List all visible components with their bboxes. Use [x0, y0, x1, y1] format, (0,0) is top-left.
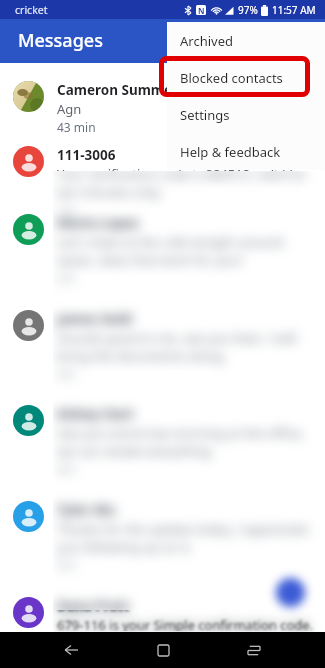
staticText: cricket: [15, 3, 48, 17]
staticText: Thanks for the update today, I appreciat…: [57, 520, 315, 556]
button[interactable]: Kelsey Hart: [0, 387, 325, 483]
staticText: Agn: [57, 100, 82, 118]
button[interactable]: Archived: [167, 22, 325, 59]
staticText: 97%: [238, 3, 258, 17]
staticText: Sounds good to me, see you then. I will …: [57, 329, 315, 347]
button[interactable]: Cameron Summers: [0, 63, 325, 135]
button[interactable]: Recent apps: [234, 632, 274, 668]
staticText: Help & feedback: [180, 143, 281, 161]
staticText: Let's meet at the cafe tonight around se…: [57, 233, 315, 269]
staticText: 11:57 AM: [272, 3, 316, 17]
staticText: 6 h: [57, 635, 75, 651]
staticText: James Gold: [57, 310, 132, 328]
staticText: 43 min: [57, 119, 96, 135]
button[interactable]: Dana Pratt: [0, 579, 325, 668]
staticText: Dana Pratt: [57, 597, 130, 615]
button[interactable]: Start chat: [276, 578, 305, 607]
staticText: Messages: [18, 28, 103, 53]
button[interactable]: Settings: [167, 96, 325, 133]
button[interactable]: 111-3006: [0, 128, 325, 218]
button[interactable]: Tyler Wu: [0, 483, 325, 579]
staticText: Blocked contacts: [180, 69, 283, 87]
staticText: Settings: [180, 106, 230, 124]
button[interactable]: Cameron Summers: [0, 63, 325, 135]
staticText: Kelsey Hart: [57, 405, 135, 423]
staticText: James Gold: [57, 310, 132, 328]
button[interactable]: James Gold: [0, 292, 325, 387]
staticText: 5 h: [57, 539, 75, 555]
button[interactable]: Home: [143, 632, 183, 668]
button[interactable]: 111-3006: [0, 128, 325, 200]
staticText: 679-116 is your Simple confirmation code…: [57, 616, 314, 634]
button[interactable]: Back: [51, 632, 91, 668]
button[interactable]: Dana Pratt: [0, 579, 325, 632]
button[interactable]: Help & feedback: [167, 133, 325, 170]
staticText: N: [198, 5, 205, 15]
button[interactable]: Dana Pratt: [0, 579, 325, 632]
staticText: 111-3006: [57, 146, 116, 164]
button[interactable]: Blocked contacts: [167, 59, 325, 96]
staticText: 1 h: [57, 184, 75, 200]
staticText: 2 h: [57, 252, 75, 268]
staticText: Archived: [180, 32, 233, 50]
staticText: 1 h: [57, 202, 75, 218]
staticText: Your verification code is 884512, valid …: [57, 165, 315, 183]
button[interactable]: Kelsey Hart: [0, 387, 325, 483]
button[interactable]: Maria Lopez: [0, 196, 325, 292]
staticText: Maria Lopez: [57, 214, 139, 232]
staticText: Tyler Wu: [57, 501, 116, 519]
staticText: 679-116 is your Simple confirmation code…: [57, 616, 314, 632]
button[interactable]: Maria Lopez: [0, 196, 325, 292]
staticText: 679-116 is your Simple confirmation code…: [57, 616, 314, 632]
staticText: Maria Lopez: [57, 214, 139, 232]
button[interactable]: Tyler Wu: [0, 483, 325, 579]
staticText: Cameron Summers: [57, 81, 185, 99]
staticText: 43 min: [57, 119, 96, 135]
staticText: Dana Pratt: [57, 597, 130, 615]
staticText: Dana Pratt: [57, 597, 130, 615]
staticText: Thanks for the update today, I appreciat…: [57, 520, 315, 538]
staticText: 111-3006: [57, 146, 116, 164]
staticText: Your verification code is 884512, valid …: [57, 165, 315, 201]
staticText: Sounds good to me, see you then. I will …: [57, 329, 315, 365]
staticText: Agn: [57, 100, 82, 118]
staticText: Let's meet at the cafe tonight around se…: [57, 233, 315, 251]
staticText: See you tomorrow morning at the office, …: [57, 424, 315, 442]
staticText: Kelsey Hart: [57, 405, 135, 423]
button[interactable]: James Gold: [0, 292, 325, 387]
staticText: Tyler Wu: [57, 501, 116, 519]
staticText: 4 h: [57, 443, 75, 459]
staticText: Cameron Summers: [57, 81, 185, 99]
staticText: See you tomorrow morning at the office, …: [57, 424, 315, 460]
